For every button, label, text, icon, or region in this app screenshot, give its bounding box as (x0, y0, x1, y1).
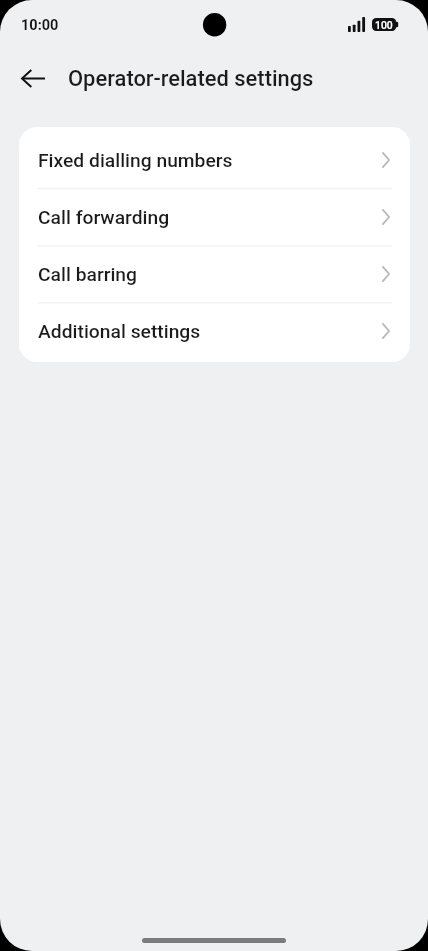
staticText: Call forwarding (38, 206, 170, 229)
staticText: Call barring (38, 263, 137, 286)
staticText: Operator-related settings (68, 66, 314, 92)
button[interactable]: Fixed dialling numbers (19, 132, 410, 189)
button[interactable]: Additional settings (19, 303, 410, 360)
staticText: 100 (375, 19, 393, 31)
button[interactable]: Call forwarding (19, 189, 410, 246)
staticText: Fixed dialling numbers (38, 149, 233, 172)
staticText: Additional settings (38, 320, 201, 343)
button[interactable]: Call barring (19, 246, 410, 303)
staticText: 10:00 (21, 17, 59, 34)
button[interactable]: Back (9, 54, 57, 102)
